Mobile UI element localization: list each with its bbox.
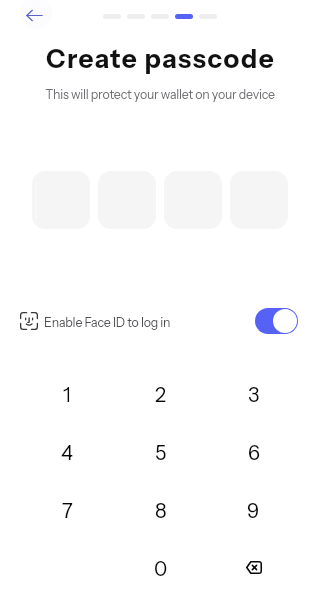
staticText: 8: [155, 499, 167, 523]
button[interactable]: 5: [114, 424, 207, 482]
staticText: This will protect your wallet on your de…: [45, 87, 275, 102]
button[interactable]: 8: [114, 482, 207, 540]
button[interactable]: Back: [20, 0, 52, 29]
button[interactable]: 7: [20, 482, 114, 540]
staticText: 7: [62, 499, 73, 523]
staticText: 6: [248, 441, 260, 465]
staticText: 3: [248, 383, 260, 407]
button[interactable]: Enable Face ID toggle: [255, 308, 298, 334]
button[interactable]: 6: [207, 424, 300, 482]
other: Backspace: [246, 561, 262, 574]
staticText: 9: [247, 499, 260, 523]
button[interactable]: 9: [207, 482, 300, 540]
button[interactable]: 2: [114, 366, 207, 424]
button[interactable]: 4: [20, 424, 114, 482]
staticText: 1: [63, 383, 71, 407]
staticText: 4: [61, 441, 73, 465]
button[interactable]: 1: [20, 366, 114, 424]
staticText: Enable Face ID to log in: [44, 315, 171, 330]
staticText: 5: [155, 441, 167, 465]
staticText: 0: [154, 557, 168, 581]
button[interactable]: 3: [207, 366, 300, 424]
button[interactable]: Backspace: [207, 540, 300, 598]
staticText: Create passcode: [46, 43, 275, 75]
staticText: 2: [155, 383, 166, 407]
button[interactable]: 0: [114, 540, 207, 598]
